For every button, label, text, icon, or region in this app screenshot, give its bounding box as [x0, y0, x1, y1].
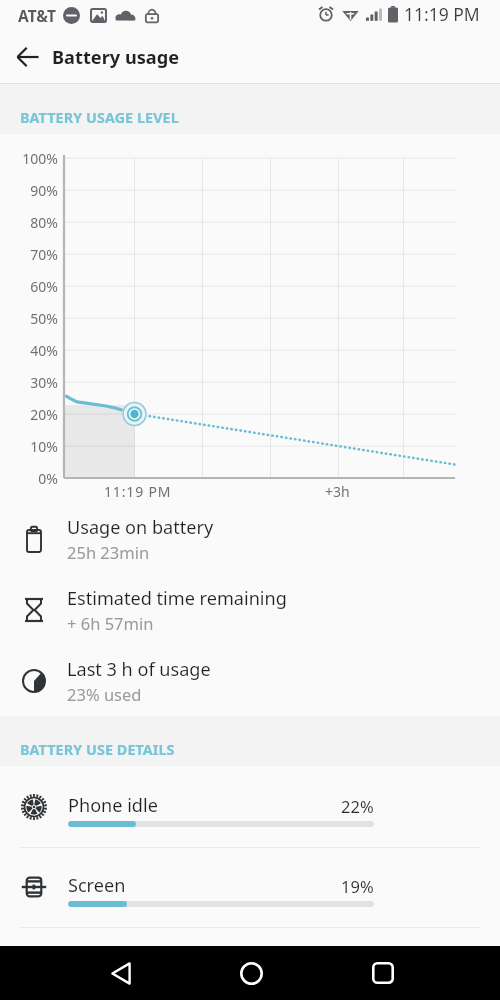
staticText: BATTERY USAGE LEVEL: [20, 108, 179, 127]
staticText: BATTERY USE DETAILS: [20, 740, 175, 759]
staticText: + 6h 57min: [67, 612, 154, 634]
staticText: 60%: [0, 277, 58, 296]
staticText: 22%: [341, 795, 374, 817]
staticText: 80%: [0, 213, 58, 232]
staticText: 100%: [0, 149, 58, 168]
staticText: 11:19 PM: [404, 2, 480, 26]
staticText: 10%: [0, 437, 58, 456]
staticText: 50%: [0, 309, 58, 328]
staticText: 30%: [0, 373, 58, 392]
button[interactable]: Back: [97, 949, 145, 997]
button[interactable]: Estimated time remaining: [0, 576, 500, 647]
staticText: 20%: [0, 405, 58, 424]
staticText: Screen: [68, 873, 126, 898]
button[interactable]: Recent apps: [359, 949, 407, 997]
staticText: 0%: [0, 469, 58, 488]
staticText: Phone idle: [68, 793, 158, 818]
staticText: 70%: [0, 245, 58, 264]
staticText: 11:19 PM: [104, 482, 172, 501]
staticText: 25h 23min: [67, 541, 150, 563]
button[interactable]: Home: [227, 949, 275, 997]
staticText: Last 3 h of usage: [67, 657, 211, 682]
button[interactable]: Usage on battery: [0, 505, 500, 576]
staticText: AT&T: [18, 5, 56, 26]
button[interactable]: Phone idle: [0, 768, 500, 847]
button[interactable]: Back: [0, 34, 54, 84]
staticText: 40%: [0, 341, 58, 360]
staticText: 90%: [0, 181, 58, 200]
staticText: Battery usage: [52, 45, 180, 70]
staticText: +3h: [325, 482, 350, 501]
button[interactable]: Last 3 h of usage: [0, 647, 500, 718]
staticText: Estimated time remaining: [67, 586, 287, 611]
button[interactable]: Screen: [0, 848, 500, 927]
staticText: 23% used: [67, 683, 142, 705]
staticText: 19%: [341, 875, 374, 897]
staticText: Usage on battery: [67, 515, 214, 540]
